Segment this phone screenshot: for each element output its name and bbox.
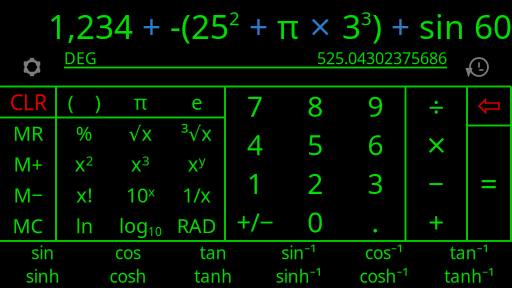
button[interactable]: sin⁻¹ (256, 241, 341, 264)
button[interactable]: 5 (285, 125, 345, 164)
staticText: xy (188, 150, 206, 177)
button[interactable]: sinh⁻¹ (256, 264, 341, 288)
staticText: 6 (367, 126, 383, 163)
button[interactable]: 4 (225, 125, 285, 164)
button[interactable]: ) (84, 86, 112, 117)
button[interactable]: 10x (112, 179, 169, 210)
staticText: sinh (26, 264, 60, 287)
button[interactable]: ÷ (405, 86, 467, 125)
button[interactable]: x! (56, 179, 112, 210)
button[interactable]: ³√x (169, 117, 225, 148)
staticText: + (240, 4, 277, 48)
staticText: 10x (126, 181, 155, 208)
staticText: − (428, 164, 444, 202)
button[interactable]: 2 (285, 164, 345, 202)
staticText: 1,234 (48, 4, 133, 48)
staticText: sin (31, 241, 54, 264)
staticText: ⨯ (299, 9, 342, 43)
staticText: 1 (247, 164, 263, 202)
staticText: e (191, 89, 202, 115)
button[interactable]: MR (0, 117, 56, 148)
staticText: π (277, 4, 299, 48)
staticText: ) (372, 4, 382, 48)
button[interactable]: RAD (169, 210, 225, 241)
button[interactable]: x3 (112, 148, 169, 179)
button[interactable]: xy (169, 148, 225, 179)
staticText: tan (200, 241, 227, 264)
staticText: + (428, 203, 444, 240)
button[interactable]: sinh (0, 264, 85, 288)
button[interactable]: 1 (225, 164, 285, 202)
staticText: % (76, 120, 93, 146)
staticText: -(25 (170, 4, 229, 48)
button[interactable]: x2 (56, 148, 112, 179)
button[interactable]: + (405, 202, 467, 241)
button[interactable]: 1/x (169, 179, 225, 210)
button[interactable]: 7 (225, 86, 285, 125)
button[interactable]: 6 (345, 125, 405, 164)
button[interactable]: log10 (112, 210, 169, 241)
staticText: sin⁻¹ (281, 241, 316, 264)
button[interactable]: 3 (345, 164, 405, 202)
button[interactable]: − (405, 164, 467, 202)
staticText: 9 (367, 87, 383, 124)
button[interactable]: CLR (0, 86, 56, 117)
staticText: x! (76, 181, 92, 208)
staticText: tanh (194, 264, 232, 287)
button[interactable]: = (467, 125, 511, 241)
button[interactable]: Settings (15, 52, 49, 82)
button[interactable]: ln (56, 210, 112, 241)
button[interactable]: M− (0, 179, 56, 210)
button[interactable]: 9 (345, 86, 405, 125)
staticText: sin 60 (419, 4, 512, 48)
staticText: sinh⁻¹ (276, 264, 322, 287)
button[interactable]: ( (57, 86, 85, 117)
staticText: ⨯ (425, 129, 447, 160)
staticText: √x (128, 120, 152, 146)
staticText: DEG (64, 47, 97, 69)
button[interactable]: . (345, 202, 405, 241)
button[interactable]: Backspace (467, 86, 511, 125)
button[interactable]: 8 (285, 86, 345, 125)
staticText: 3 (367, 164, 383, 202)
staticText: x3 (131, 150, 150, 177)
staticText: + (133, 4, 170, 48)
staticText: tan⁻¹ (450, 241, 489, 264)
staticText: = (480, 163, 498, 204)
button[interactable]: cos⁻¹ (341, 241, 427, 264)
button[interactable]: +/− (225, 202, 285, 241)
button[interactable]: tanh (171, 264, 256, 288)
staticText: 1/x (182, 181, 211, 208)
staticText: tanh⁻¹ (444, 264, 494, 287)
button[interactable]: cos (85, 241, 171, 264)
button[interactable]: e (169, 86, 225, 117)
button[interactable]: sin (0, 241, 85, 264)
button[interactable]: DEG (64, 49, 100, 67)
staticText: cosh⁻¹ (359, 264, 408, 287)
button[interactable]: History (462, 52, 496, 82)
staticText: π (134, 89, 147, 115)
button[interactable]: M+ (0, 148, 56, 179)
staticText: MC (12, 212, 43, 239)
staticText: ( (68, 89, 74, 115)
button[interactable]: tan (171, 241, 256, 264)
staticText: 7 (247, 87, 263, 124)
button[interactable]: cosh⁻¹ (341, 264, 427, 288)
button[interactable]: 0 (285, 202, 345, 241)
button[interactable]: √x (112, 117, 169, 148)
staticText: cos (115, 241, 141, 264)
staticText: 0 (307, 203, 323, 240)
button[interactable]: tanh⁻¹ (427, 264, 512, 288)
button[interactable]: MC (0, 210, 56, 241)
staticText: 525.04302375686 (317, 47, 447, 69)
staticText: 3 (361, 6, 372, 30)
button[interactable]: tan⁻¹ (427, 241, 512, 264)
button[interactable]: ⨯ (405, 125, 467, 164)
button[interactable]: π (112, 86, 169, 117)
button[interactable]: cosh (85, 264, 171, 288)
staticText: MR (13, 120, 43, 146)
staticText: M+ (13, 150, 42, 177)
staticText: 5 (307, 126, 323, 163)
button[interactable]: % (56, 117, 112, 148)
staticText: cos⁻¹ (365, 241, 403, 264)
